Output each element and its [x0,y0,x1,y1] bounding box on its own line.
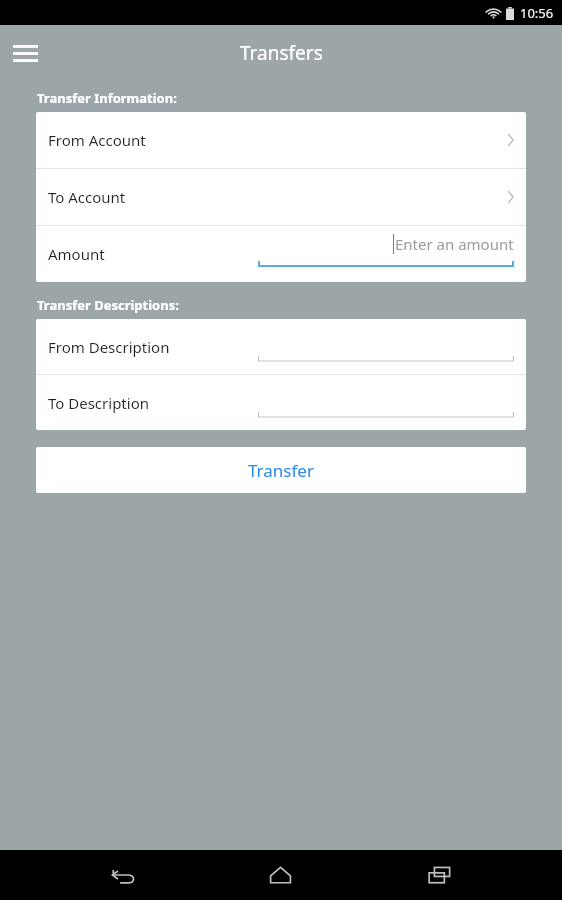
button[interactable]: To Description [36,375,526,430]
staticText: Amount [48,244,105,264]
staticText: Transfers [240,40,323,66]
staticText: Enter an amount [395,234,514,254]
button[interactable]: Home [244,851,316,899]
button[interactable]: Amount [36,226,526,282]
button[interactable]: From Description [36,319,526,374]
staticText: Transfer [248,459,314,482]
staticText: To Description [48,393,149,413]
staticText: To Account [48,187,126,207]
staticText: 10:56 [520,4,554,22]
button[interactable]: Transfer [36,447,526,493]
staticText: From Account [48,130,146,150]
staticText: Transfer Descriptions: [37,296,179,314]
button[interactable]: To Account [36,169,526,225]
button[interactable]: From Account [36,112,526,168]
button[interactable]: Open navigation menu [3,31,47,75]
staticText: Transfer Information: [37,89,177,107]
button[interactable]: Recent apps [403,851,475,899]
button[interactable]: Back [86,851,158,899]
staticText: From Description [48,337,170,357]
